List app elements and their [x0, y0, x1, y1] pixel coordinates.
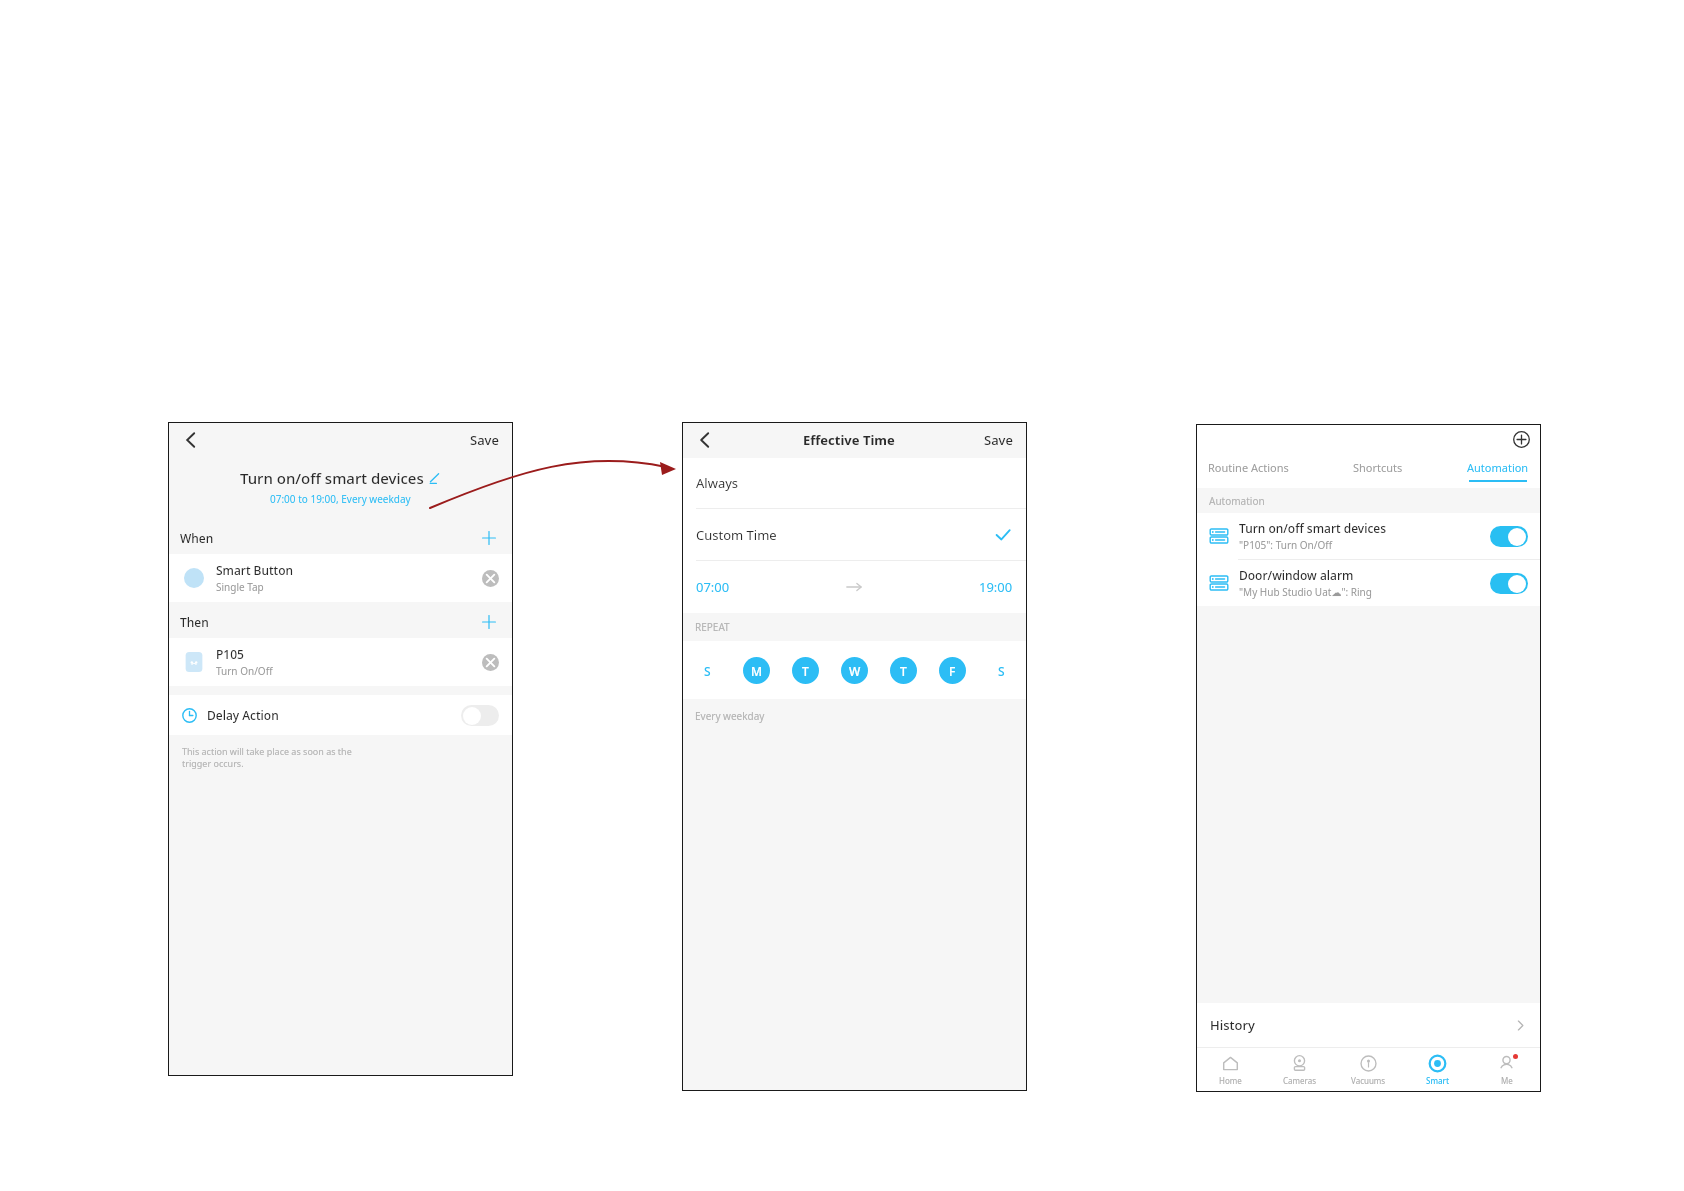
staticText: 07:00 [696, 578, 730, 596]
staticText: "My Hub Studio Uat☁": Ring [1239, 585, 1372, 599]
staticText: Save [984, 431, 1013, 449]
button[interactable]: S [694, 657, 721, 684]
staticText: Smart Button [216, 562, 294, 578]
staticText: Home [1219, 1075, 1242, 1086]
staticText: M [751, 663, 763, 679]
staticText: W [849, 663, 861, 679]
staticText: 07:00 to 19:00, Every weekday [270, 492, 411, 506]
staticText: Every weekday [695, 709, 765, 723]
button[interactable]: Save [462, 427, 507, 453]
button[interactable]: Add When [477, 526, 501, 550]
staticText: S [704, 663, 711, 679]
button[interactable]: Routine Actions [1206, 460, 1291, 482]
staticText: Smart [1426, 1075, 1449, 1086]
button[interactable]: Back [174, 423, 208, 457]
staticText: Me [1501, 1075, 1513, 1086]
staticText: Automation [1467, 460, 1529, 475]
staticText: History [1210, 1016, 1255, 1034]
staticText: Then [180, 614, 209, 630]
staticText: F [949, 663, 956, 679]
staticText: 19:00 [979, 578, 1013, 596]
staticText: Automation [1209, 494, 1265, 508]
staticText: S [998, 663, 1005, 679]
button[interactable]: Add Then [477, 610, 501, 634]
staticText: Turn on/off smart devices [1239, 520, 1386, 536]
button[interactable]: T [792, 657, 819, 684]
button[interactable]: Toggle [1490, 573, 1528, 594]
button[interactable]: Save [976, 427, 1021, 453]
button[interactable]: Delay Action [168, 695, 513, 735]
staticText: T [802, 663, 809, 679]
button[interactable]: Back [688, 423, 722, 457]
staticText: Cameras [1283, 1075, 1316, 1086]
staticText: Turn on/off smart devices [240, 468, 424, 488]
staticText: REPEAT [695, 620, 730, 634]
staticText: When [180, 530, 214, 546]
staticText: P105 [216, 646, 244, 662]
button[interactable]: Toggle [461, 705, 499, 726]
button[interactable]: Me [1472, 1048, 1541, 1092]
button[interactable]: 07:00 [682, 561, 1027, 613]
staticText: T [900, 663, 907, 679]
button[interactable]: Cameras [1265, 1048, 1334, 1092]
staticText: Effective Time [803, 431, 895, 449]
button[interactable]: History [1196, 1003, 1541, 1047]
button[interactable]: Vacuums [1334, 1048, 1403, 1092]
button[interactable]: T [890, 657, 917, 684]
staticText: Routine Actions [1208, 460, 1289, 475]
button[interactable]: Smart [1403, 1048, 1472, 1092]
button[interactable]: Edit [428, 471, 442, 485]
staticText: This action will take place as soon as t… [182, 745, 352, 769]
staticText: Delay Action [207, 707, 279, 723]
staticText: Single Tap [216, 580, 264, 594]
staticText: Turn On/Off [216, 664, 273, 678]
button[interactable]: Toggle [1490, 526, 1528, 547]
button[interactable]: W [841, 657, 868, 684]
staticText: Always [696, 474, 739, 492]
staticText: Custom Time [696, 526, 777, 544]
button[interactable]: Door/window alarm [1196, 560, 1541, 606]
button[interactable]: Home [1196, 1048, 1265, 1092]
staticText: Vacuums [1351, 1075, 1386, 1086]
button[interactable]: P105 [168, 638, 513, 686]
button[interactable]: Turn on/off smart devices [1196, 513, 1541, 559]
button[interactable]: F [939, 657, 966, 684]
button[interactable]: Remove [477, 649, 503, 675]
button[interactable]: Remove [477, 565, 503, 591]
button[interactable]: M [743, 657, 770, 684]
button[interactable]: Smart Button [168, 554, 513, 602]
button[interactable]: Automation [1465, 460, 1531, 482]
button[interactable]: Shortcuts [1351, 460, 1405, 482]
button[interactable]: S [988, 657, 1015, 684]
button[interactable]: Custom Time [682, 509, 1027, 560]
button[interactable]: Always [682, 458, 1027, 508]
staticText: Save [470, 431, 499, 449]
staticText: "P105": Turn On/Off [1239, 538, 1333, 552]
staticText: Door/window alarm [1239, 567, 1354, 583]
button[interactable]: Add automation [1509, 427, 1533, 451]
staticText: Shortcuts [1353, 460, 1403, 475]
